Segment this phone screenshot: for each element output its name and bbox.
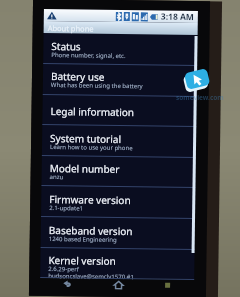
button[interactable]: System tutorial <box>42 125 196 158</box>
staticText: Firmware version <box>49 192 131 207</box>
button[interactable]: Home <box>114 281 123 289</box>
staticText: anzu <box>49 173 64 181</box>
staticText: 2.1-update1 <box>49 204 83 212</box>
button[interactable]: Back <box>62 279 72 287</box>
staticText: About phone <box>48 23 94 34</box>
staticText: 3:18 AM <box>161 11 195 23</box>
staticText: Status <box>51 39 81 53</box>
staticText: 2.6.29-perf <box>48 265 79 273</box>
button[interactable]: Legal information <box>42 94 197 127</box>
staticText: Kernel version <box>48 253 116 268</box>
button[interactable]: Menu <box>165 283 170 288</box>
staticText: System tutorial <box>50 131 121 146</box>
staticText: What has been using the battery <box>51 81 143 90</box>
staticText: hudsoncslave@semclv1570 #1 <box>48 272 134 281</box>
staticText: Baseband version <box>49 223 133 238</box>
button[interactable]: Status <box>43 33 198 66</box>
staticText: Battery use <box>51 69 105 84</box>
button[interactable]: Model number <box>41 155 196 188</box>
button[interactable]: Battery use <box>43 63 197 96</box>
button[interactable]: Kernel version <box>40 247 195 280</box>
button[interactable]: Baseband version <box>41 217 195 250</box>
staticText: Legal information <box>50 104 135 119</box>
button[interactable]: Firmware version <box>41 186 195 219</box>
staticText: someview.com <box>176 93 224 102</box>
staticText: Phone number, signal, etc. <box>51 51 126 60</box>
staticText: 1240 based Engineering <box>49 235 118 244</box>
staticText: Model number <box>50 161 120 176</box>
staticText: Learn how to use your phone <box>50 143 133 152</box>
